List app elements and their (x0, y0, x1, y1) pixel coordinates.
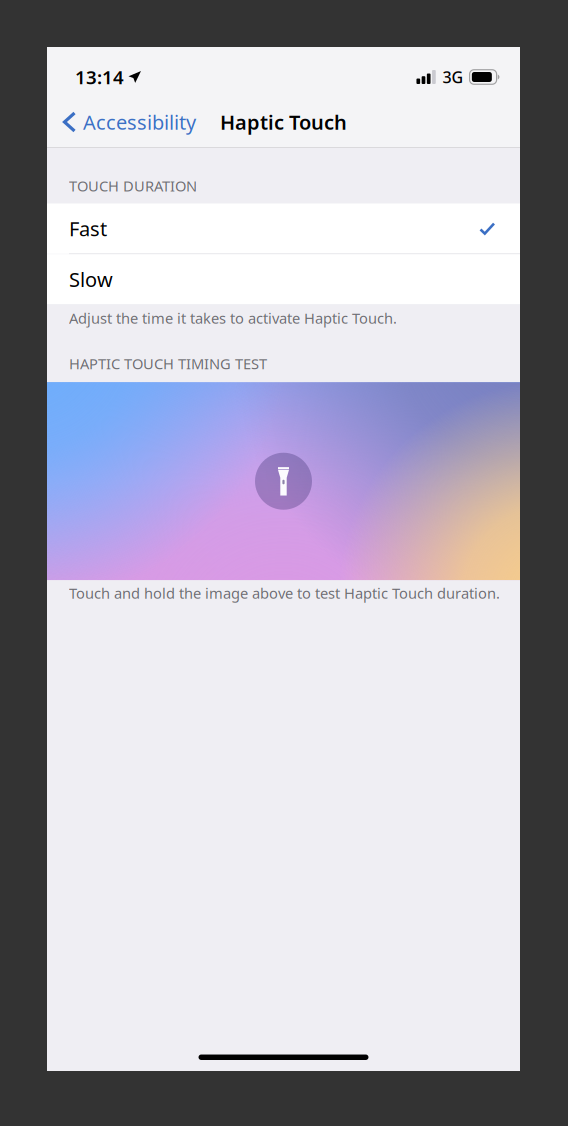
button[interactable]: Slow (47, 254, 520, 304)
button[interactable]: Haptic Touch timing test (47, 382, 520, 580)
staticText: Fast (69, 215, 107, 242)
button[interactable]: Accessibility (47, 100, 206, 144)
staticText: 3G (443, 66, 464, 88)
staticText: HAPTIC TOUCH TIMING TEST (69, 354, 267, 373)
button[interactable]: Fast (47, 203, 520, 253)
staticText: 13:14 (75, 65, 124, 89)
staticText: TOUCH DURATION (69, 176, 197, 195)
staticText: Slow (69, 266, 113, 293)
staticText: Haptic Touch (220, 109, 347, 135)
staticText: Adjust the time it takes to activate Hap… (69, 308, 397, 328)
staticText: Accessibility (83, 109, 196, 135)
staticText: Touch and hold the image above to test H… (69, 583, 500, 603)
